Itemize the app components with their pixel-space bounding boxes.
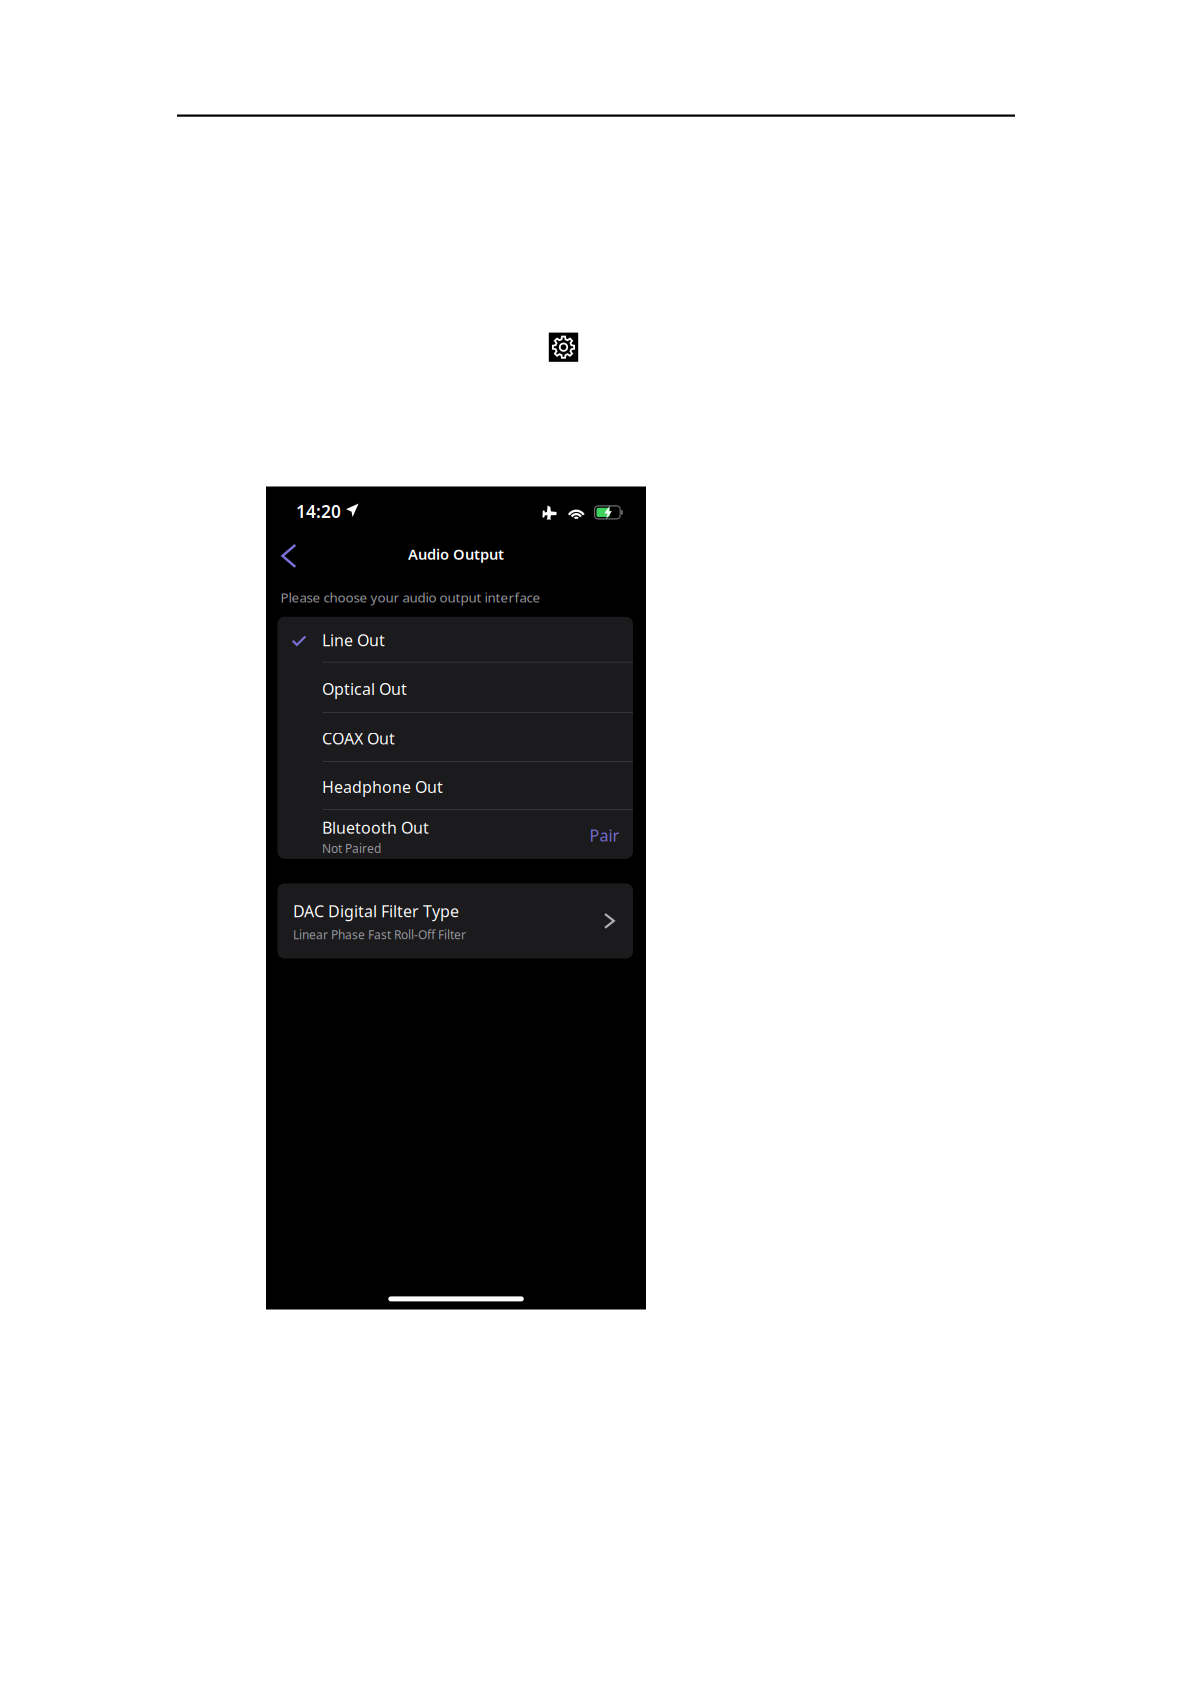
staticText: Headphone Out [322,776,443,797]
staticText: Bluetooth Out [322,817,429,838]
staticText: Line Out [322,629,385,651]
staticText: Not Paired [322,840,381,856]
button[interactable]: Optical Out [277,663,633,712]
staticText: DAC Digital Filter Type [293,900,459,922]
button[interactable]: COAX Out [277,713,633,761]
staticText: Optical Out [322,678,407,699]
button[interactable]: Line Out [277,616,633,662]
staticText: COAX Out [322,728,395,749]
staticText: 14:20 [296,500,341,523]
staticText: Pair [589,825,619,846]
staticText: Audio Output [408,544,504,564]
staticText: Linear Phase Fast Roll-Off Filter [293,927,466,943]
button[interactable]: Back [267,536,311,576]
button[interactable]: Bluetooth Out [277,810,633,860]
button[interactable]: Headphone Out [277,762,633,809]
button[interactable]: DAC Digital Filter Type [277,883,633,958]
staticText: Please choose your audio output interfac… [280,588,540,606]
